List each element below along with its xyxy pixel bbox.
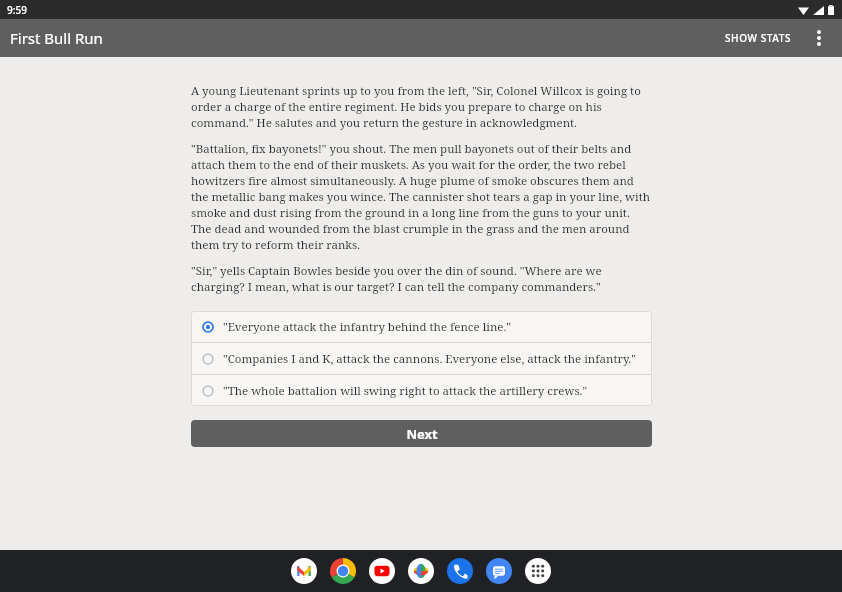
button[interactable]: Gmail: [291, 558, 317, 584]
button[interactable]: YouTube: [369, 558, 395, 584]
staticText: SHOW STATS: [725, 31, 792, 45]
button[interactable]: Messages: [486, 558, 512, 584]
button[interactable]: Photos: [408, 558, 434, 584]
staticText: "Companies I and K, attack the cannons. …: [223, 351, 636, 367]
staticText: First Bull Run: [10, 28, 103, 48]
button[interactable]: "The whole battalion will swing right to…: [191, 375, 652, 406]
button[interactable]: "Everyone attack the infantry behind the…: [191, 311, 652, 342]
staticText: "Sir," yells Captain Bowles beside you o…: [191, 263, 652, 295]
button[interactable]: More options: [800, 19, 838, 57]
button[interactable]: SHOW STATS: [717, 23, 800, 53]
button[interactable]: Next: [191, 420, 652, 447]
staticText: "The whole battalion will swing right to…: [223, 383, 588, 399]
staticText: A young Lieutenant sprints up to you fro…: [191, 83, 652, 131]
staticText: 9:59: [7, 3, 27, 17]
button[interactable]: All apps: [525, 558, 551, 584]
staticText: Next: [406, 425, 438, 443]
staticText: "Battalion, fix bayonets!" you shout. Th…: [191, 141, 652, 253]
staticText: "Everyone attack the infantry behind the…: [223, 319, 512, 335]
button[interactable]: "Companies I and K, attack the cannons. …: [191, 343, 652, 374]
button[interactable]: Chrome: [330, 558, 356, 584]
button[interactable]: Phone: [447, 558, 473, 584]
